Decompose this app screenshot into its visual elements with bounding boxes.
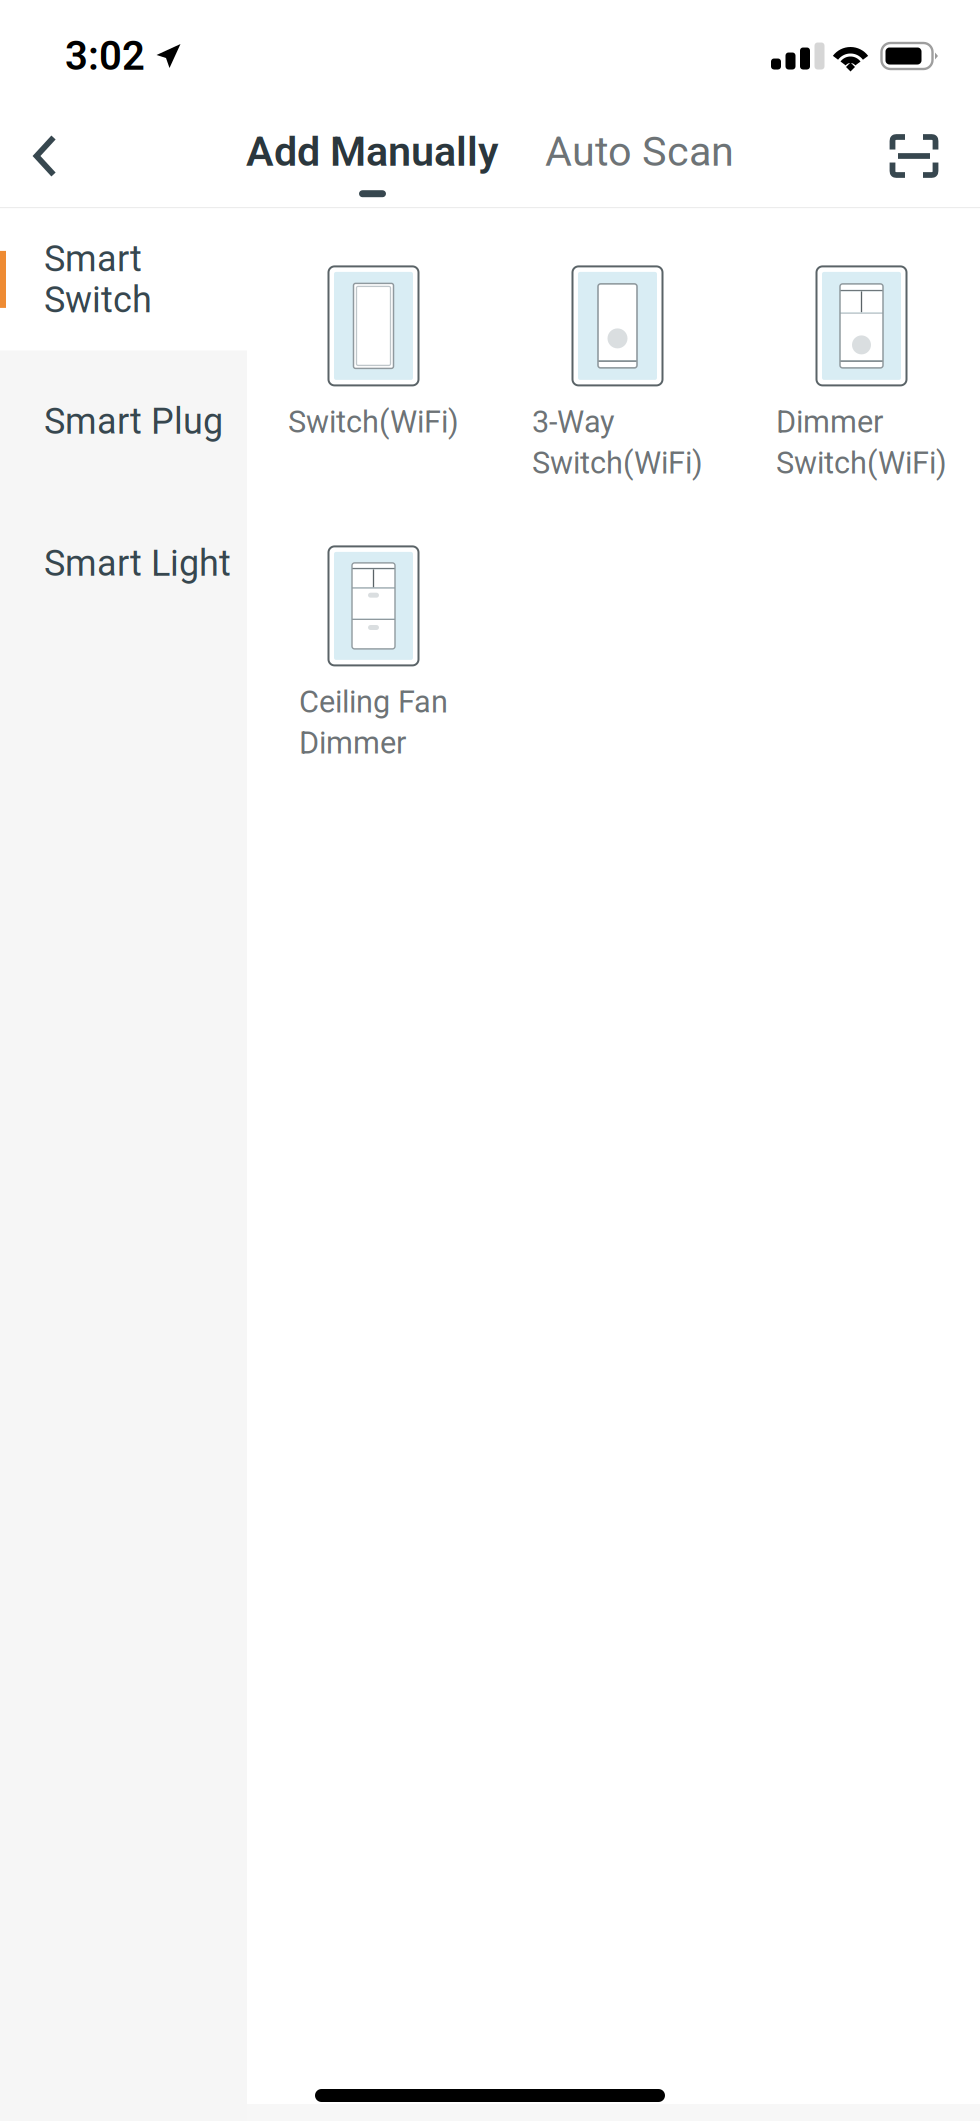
button[interactable]: Ceiling Fan Dimmer bbox=[251, 546, 495, 826]
staticText: Dimmer Switch(WiFi) bbox=[776, 404, 947, 480]
button[interactable]: Dimmer Switch(WiFi) bbox=[739, 266, 980, 546]
button[interactable]: Switch(WiFi) bbox=[251, 266, 495, 546]
button[interactable]: 3-Way Switch(WiFi) bbox=[495, 266, 739, 546]
staticText: 3:02 bbox=[65, 33, 145, 79]
staticText: Smart Light bbox=[44, 543, 231, 584]
button[interactable]: Scan QR code bbox=[870, 112, 958, 200]
staticText: Switch(WiFi) bbox=[288, 404, 459, 439]
staticText: Smart Switch bbox=[44, 238, 152, 321]
button[interactable]: Smart Switch bbox=[0, 208, 247, 350]
button[interactable]: Smart Plug bbox=[0, 350, 247, 492]
button[interactable]: Smart Light bbox=[0, 492, 247, 634]
staticText: Smart Plug bbox=[44, 401, 223, 442]
button[interactable]: Auto Scan bbox=[545, 128, 734, 197]
staticText: Ceiling Fan Dimmer bbox=[299, 684, 448, 760]
button[interactable]: Back bbox=[11, 112, 79, 200]
staticText: 3-Way Switch(WiFi) bbox=[532, 404, 703, 480]
staticText: Auto Scan bbox=[545, 128, 734, 175]
staticText: Add Manually bbox=[246, 128, 499, 175]
button[interactable]: Add Manually bbox=[246, 128, 499, 197]
